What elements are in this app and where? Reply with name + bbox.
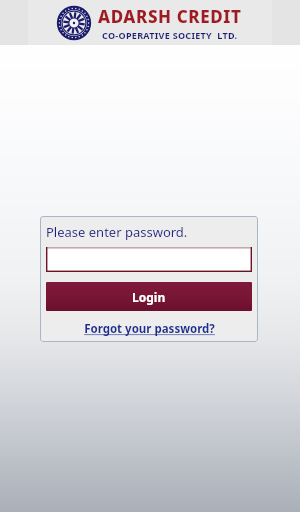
staticText: Please enter password.	[46, 223, 188, 241]
staticText: Login	[132, 289, 166, 305]
button[interactable]: Forgot your password?	[80, 320, 219, 338]
staticText: Forgot your password?	[84, 321, 215, 337]
staticText: CO-OPERATIVE SOCIETY LTD.	[102, 29, 238, 41]
button[interactable]: Password field	[46, 247, 252, 272]
staticText: ADARSH CREDIT	[98, 5, 242, 28]
button[interactable]: Login	[46, 282, 252, 311]
